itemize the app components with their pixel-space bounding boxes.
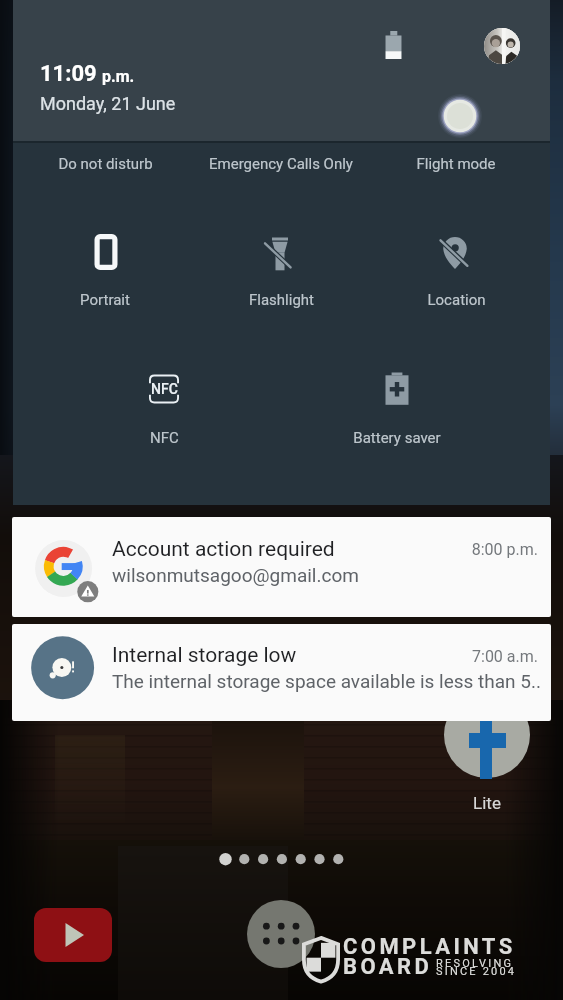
button[interactable]: Lite — [444, 692, 530, 778]
button[interactable]: Emergency Calls Only — [176, 149, 386, 179]
staticText: Do not disturb — [58, 155, 153, 173]
staticText: p.m. — [102, 67, 135, 86]
staticText: SINCE 2004 — [436, 965, 517, 978]
button[interactable]: User profile — [484, 28, 520, 64]
button[interactable]: Battery saver — [292, 423, 502, 453]
staticText: wilsonmutsagoo@gmail.com — [112, 564, 551, 586]
staticText: 8:00 p.m. — [12, 540, 538, 559]
staticText: NFC — [151, 381, 178, 397]
staticText: Portrait — [80, 291, 130, 309]
staticText: COMPLAINTS — [343, 934, 516, 960]
button[interactable]: Location — [351, 285, 561, 315]
staticText: Internal storage low — [112, 643, 297, 668]
staticText: Location — [427, 291, 486, 309]
button[interactable]: YouTube — [34, 908, 112, 962]
staticText: Flashlight — [249, 291, 314, 309]
staticText: Monday, 21 June — [40, 93, 176, 114]
button[interactable]: All apps — [247, 900, 315, 968]
staticText: BOARD — [343, 954, 433, 980]
staticText: 11:09 — [40, 61, 97, 87]
button[interactable]: Account action required — [12, 517, 551, 617]
button[interactable]: Portrait — [0, 285, 210, 315]
button[interactable]: Flashlight — [176, 285, 386, 315]
button[interactable]: NFC — [59, 423, 269, 453]
staticText: Account action required — [112, 537, 335, 562]
staticText: Lite — [446, 793, 528, 813]
staticText: The internal storage space available is … — [112, 670, 551, 692]
button[interactable]: Do not disturb — [0, 149, 210, 179]
staticText: 7:00 a.m. — [12, 647, 538, 666]
staticText: Battery saver — [353, 429, 441, 447]
staticText: RESOLVING — [436, 957, 514, 970]
staticText: NFC — [150, 429, 179, 447]
button[interactable]: Internal storage low — [12, 624, 551, 721]
staticText: Flight mode — [416, 155, 496, 173]
button[interactable]: Flight mode — [351, 149, 561, 179]
staticText: Emergency Calls Only — [209, 155, 353, 173]
